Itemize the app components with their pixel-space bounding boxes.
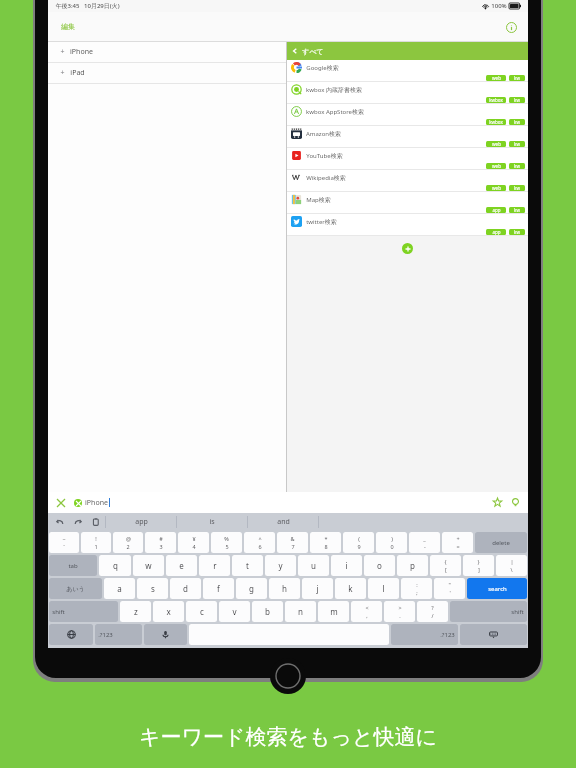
button[interactable]: j: [302, 578, 333, 599]
button[interactable]: kwbox AppStore検索: [287, 104, 528, 126]
button[interactable]: e: [166, 555, 197, 576]
button[interactable]: Map検索: [287, 192, 528, 214]
button[interactable]: Home: [270, 658, 306, 694]
staticText: h: [282, 583, 287, 594]
staticText: %: [224, 535, 229, 542]
button[interactable]: l: [368, 578, 399, 599]
button[interactable]: }: [463, 555, 494, 576]
button[interactable]: .?123: [391, 624, 458, 645]
staticText: -: [424, 543, 426, 550]
button[interactable]: ): [376, 532, 407, 553]
button[interactable]: Hide keyboard: [460, 624, 527, 645]
button[interactable]: tab: [49, 555, 97, 576]
button[interactable]: Info: [504, 20, 518, 34]
button[interactable]: Dictation: [144, 624, 187, 645]
button[interactable]: v: [219, 601, 250, 622]
button[interactable]: Hint: [509, 496, 522, 509]
button[interactable]: !: [81, 532, 111, 553]
staticText: .?123: [440, 631, 455, 639]
button[interactable]: k: [335, 578, 366, 599]
staticText: キーワード検索をもっと快適に: [139, 724, 437, 750]
button[interactable]: m: [318, 601, 349, 622]
button[interactable]: h: [269, 578, 300, 599]
staticText: 5: [225, 543, 229, 550]
button[interactable]: Favorite: [491, 496, 504, 509]
button[interactable]: %: [211, 532, 242, 553]
staticText: [: [445, 566, 447, 573]
button[interactable]: Google検索: [287, 60, 528, 82]
button[interactable]: p: [397, 555, 428, 576]
button[interactable]: &: [277, 532, 308, 553]
button[interactable]: o: [364, 555, 395, 576]
button[interactable]: delete: [475, 532, 527, 553]
button[interactable]: a: [104, 578, 135, 599]
button[interactable]: Globe: [49, 624, 93, 645]
button[interactable]: q: [99, 555, 131, 576]
button[interactable]: n: [285, 601, 316, 622]
button[interactable]: Add: [402, 243, 413, 254]
staticText: q: [113, 560, 118, 571]
button[interactable]: kwbox 内蔵辞書検索: [287, 82, 528, 104]
button[interactable]: w: [133, 555, 164, 576]
button[interactable]: (: [343, 532, 374, 553]
button[interactable]: ¥: [178, 532, 209, 553]
button[interactable]: f: [203, 578, 234, 599]
button[interactable]: ": [434, 578, 465, 599]
staticText: @: [126, 535, 131, 542]
button[interactable]: {: [430, 555, 461, 576]
button[interactable]: *: [310, 532, 341, 553]
button[interactable]: shift: [450, 601, 527, 622]
button[interactable]: >: [384, 601, 415, 622]
button[interactable]: c: [186, 601, 217, 622]
button[interactable]: あいう: [49, 578, 102, 599]
staticText: u: [311, 560, 316, 571]
button[interactable]: Amazon検索: [287, 126, 528, 148]
button[interactable]: @: [113, 532, 143, 553]
button[interactable]: and: [248, 513, 318, 531]
button[interactable]: y: [265, 555, 296, 576]
button[interactable]: ^: [244, 532, 275, 553]
staticText: shift: [52, 608, 65, 616]
button[interactable]: <: [351, 601, 382, 622]
button[interactable]: _: [409, 532, 440, 553]
button[interactable]: |: [496, 555, 527, 576]
staticText: ?: [431, 604, 434, 611]
button[interactable]: search: [467, 578, 527, 599]
button[interactable]: #: [145, 532, 176, 553]
button[interactable]: app: [106, 513, 176, 531]
staticText: iPhone: [70, 47, 93, 57]
button[interactable]: +: [48, 63, 286, 83]
button[interactable]: z: [120, 601, 151, 622]
button[interactable]: ?: [417, 601, 448, 622]
staticText: 8: [324, 543, 328, 550]
staticText: +: [60, 68, 65, 78]
staticText: i: [345, 560, 348, 571]
staticText: app: [135, 517, 148, 527]
staticText: iPad: [70, 68, 85, 78]
staticText: e: [179, 560, 184, 571]
button[interactable]: g: [236, 578, 267, 599]
button[interactable]: すべて: [287, 42, 528, 60]
button[interactable]: i: [331, 555, 362, 576]
button[interactable]: b: [252, 601, 283, 622]
button[interactable]: 編集: [58, 19, 78, 34]
button[interactable]: YouTube検索: [287, 148, 528, 170]
button[interactable]: shift: [49, 601, 118, 622]
button[interactable]: twitter検索: [287, 214, 528, 236]
button[interactable]: x: [153, 601, 184, 622]
button[interactable]: d: [170, 578, 201, 599]
button[interactable]: t: [232, 555, 263, 576]
button[interactable]: .?123: [95, 624, 142, 645]
button[interactable]: Wikipedia検索: [287, 170, 528, 192]
button[interactable]: ~: [49, 532, 79, 553]
button[interactable]: :: [401, 578, 432, 599]
button[interactable]: +: [48, 42, 286, 62]
button[interactable]: r: [199, 555, 230, 576]
button[interactable]: u: [298, 555, 329, 576]
button[interactable]: s: [137, 578, 168, 599]
button[interactable]: is: [177, 513, 247, 531]
button[interactable]: +: [442, 532, 473, 553]
staticText: {: [444, 558, 447, 565]
button[interactable]: Close: [54, 496, 67, 509]
